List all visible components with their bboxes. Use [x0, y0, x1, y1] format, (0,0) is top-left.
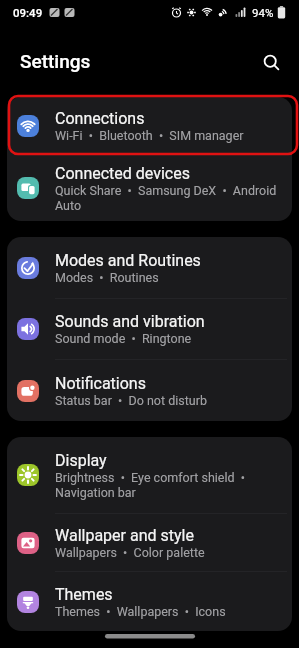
- staticText: Settings: [20, 50, 91, 72]
- staticText: Wallpaper and style: [55, 526, 194, 545]
- staticText: Wi-Fi • Bluetooth • SIM manager: [55, 128, 244, 143]
- staticText: Sound mode • Ringtone: [55, 331, 192, 346]
- staticText: Status bar • Do not disturb: [55, 393, 207, 408]
- staticText: Modes • Routines: [55, 270, 159, 285]
- staticText: Wallpapers • Color palette: [55, 545, 205, 560]
- staticText: Quick Share • Samsung DeX • Android Auto: [55, 183, 277, 213]
- staticText: Modes and Routines: [55, 251, 201, 270]
- staticText: Connected devices: [55, 164, 190, 183]
- staticText: Display: [55, 451, 107, 470]
- button[interactable]: Display: [7, 437, 292, 513]
- button[interactable]: Themes: [7, 572, 292, 631]
- button[interactable]: Sounds and vibration: [7, 299, 292, 359]
- staticText: Themes: [55, 585, 113, 604]
- button[interactable]: Notifications: [7, 360, 292, 421]
- button[interactable]: Connected devices: [7, 155, 292, 221]
- staticText: 94%: [252, 6, 274, 19]
- button[interactable]: Connections: [7, 97, 292, 155]
- staticText: Sounds and vibration: [55, 312, 205, 331]
- staticText: Connections: [55, 109, 145, 128]
- button[interactable]: Modes and Routines: [7, 237, 292, 298]
- staticText: Notifications: [55, 374, 146, 393]
- button[interactable]: Wallpaper and style: [7, 514, 292, 571]
- staticText: Themes • Wallpapers • Icons: [55, 604, 226, 619]
- staticText: Brightness • Eye comfort shield • Naviga…: [55, 470, 245, 500]
- button[interactable]: [262, 53, 282, 73]
- staticText: 09:49: [13, 6, 43, 19]
